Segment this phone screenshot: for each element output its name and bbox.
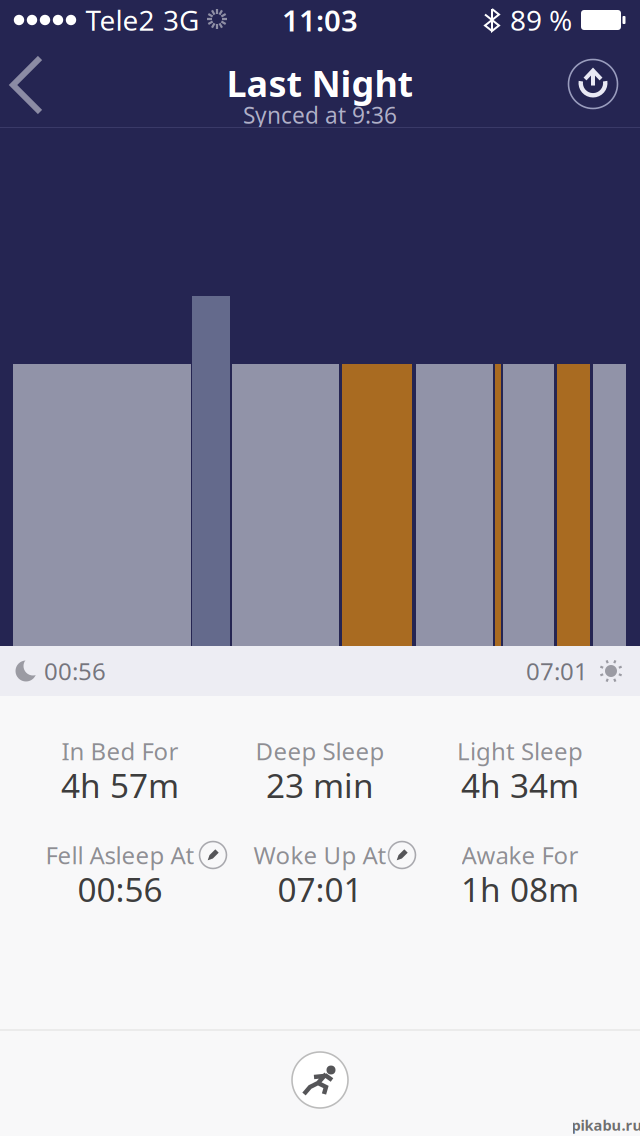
staticText: 1h 08m (461, 867, 579, 911)
button[interactable]: Sync (568, 59, 617, 108)
staticText: Last Night (226, 59, 413, 107)
staticText: 89 % (510, 1, 572, 39)
staticText: pikabu.ru (571, 1115, 640, 1135)
staticText: Deep Sleep (255, 735, 384, 767)
staticText: 4h 34m (461, 763, 579, 807)
staticText: Woke Up At (253, 839, 386, 871)
staticText: 23 min (266, 763, 374, 807)
staticText: 07:01 (277, 867, 362, 911)
staticText: Synced at 9:36 (243, 100, 397, 130)
staticText: 11:03 (282, 0, 358, 39)
staticText: 00:56 (44, 655, 106, 687)
staticText: 4h 57m (61, 763, 179, 807)
staticText: In Bed For (61, 735, 178, 767)
staticText: 07:01 (526, 655, 588, 687)
staticText: 00:56 (77, 867, 162, 911)
button[interactable]: Edit (199, 841, 226, 868)
staticText: Fell Asleep At (45, 839, 194, 871)
button[interactable]: Back (0, 40, 52, 128)
button[interactable]: Edit (388, 841, 415, 868)
button[interactable]: Log workout (292, 1052, 348, 1108)
staticText: Awake For (461, 839, 578, 871)
staticText: Light Sleep (457, 735, 583, 767)
staticText: 3G (163, 1, 199, 39)
staticText: Tele2 (85, 1, 154, 39)
